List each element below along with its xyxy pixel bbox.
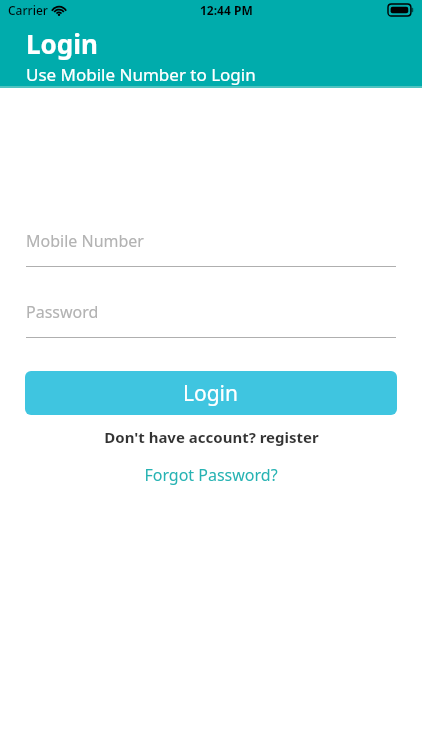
staticText: 12:44 PM xyxy=(200,2,253,18)
button[interactable]: Don't have account? register xyxy=(0,424,422,450)
staticText: Login xyxy=(183,379,239,408)
other: Battery xyxy=(388,4,414,16)
staticText: Carrier xyxy=(8,2,48,18)
button[interactable]: Login xyxy=(25,371,397,415)
staticText: Don't have account? register xyxy=(104,427,319,447)
button[interactable]: Mobile Number xyxy=(26,228,396,267)
staticText: Forgot Password? xyxy=(144,464,278,486)
staticText: Use Mobile Number to Login xyxy=(26,63,256,86)
other: Wi-Fi xyxy=(52,5,66,16)
staticText: Password xyxy=(26,301,99,323)
staticText: Mobile Number xyxy=(26,230,144,252)
button[interactable]: Password xyxy=(26,299,396,338)
staticText: Login xyxy=(26,26,98,61)
button[interactable]: Forgot Password? xyxy=(0,461,422,489)
